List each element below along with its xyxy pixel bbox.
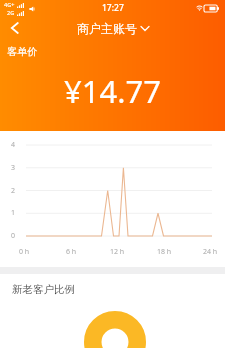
button[interactable]: 商户主账号 [73, 17, 153, 40]
staticText: 0 h [19, 247, 30, 257]
staticText: 3 [11, 163, 16, 173]
staticText: 2 [11, 186, 16, 196]
staticText: 0 [11, 231, 16, 241]
staticText: 4 [11, 140, 16, 150]
staticText: 12 h [110, 247, 125, 257]
staticText: 24 h [203, 247, 218, 257]
button[interactable]: 返回 [0, 13, 30, 43]
staticText: ¥14.77 [64, 70, 161, 112]
staticText: 4G+ [4, 1, 15, 8]
staticText: 1 [11, 208, 16, 218]
staticText: 17:27 [102, 2, 124, 14]
staticText: 18 h [157, 247, 172, 257]
staticText: 2G [7, 9, 15, 16]
staticText: 客单价 [7, 45, 37, 58]
staticText: 商户主账号 [77, 21, 137, 36]
staticText: 6 h [66, 247, 77, 257]
staticText: 新老客户比例 [12, 283, 75, 296]
